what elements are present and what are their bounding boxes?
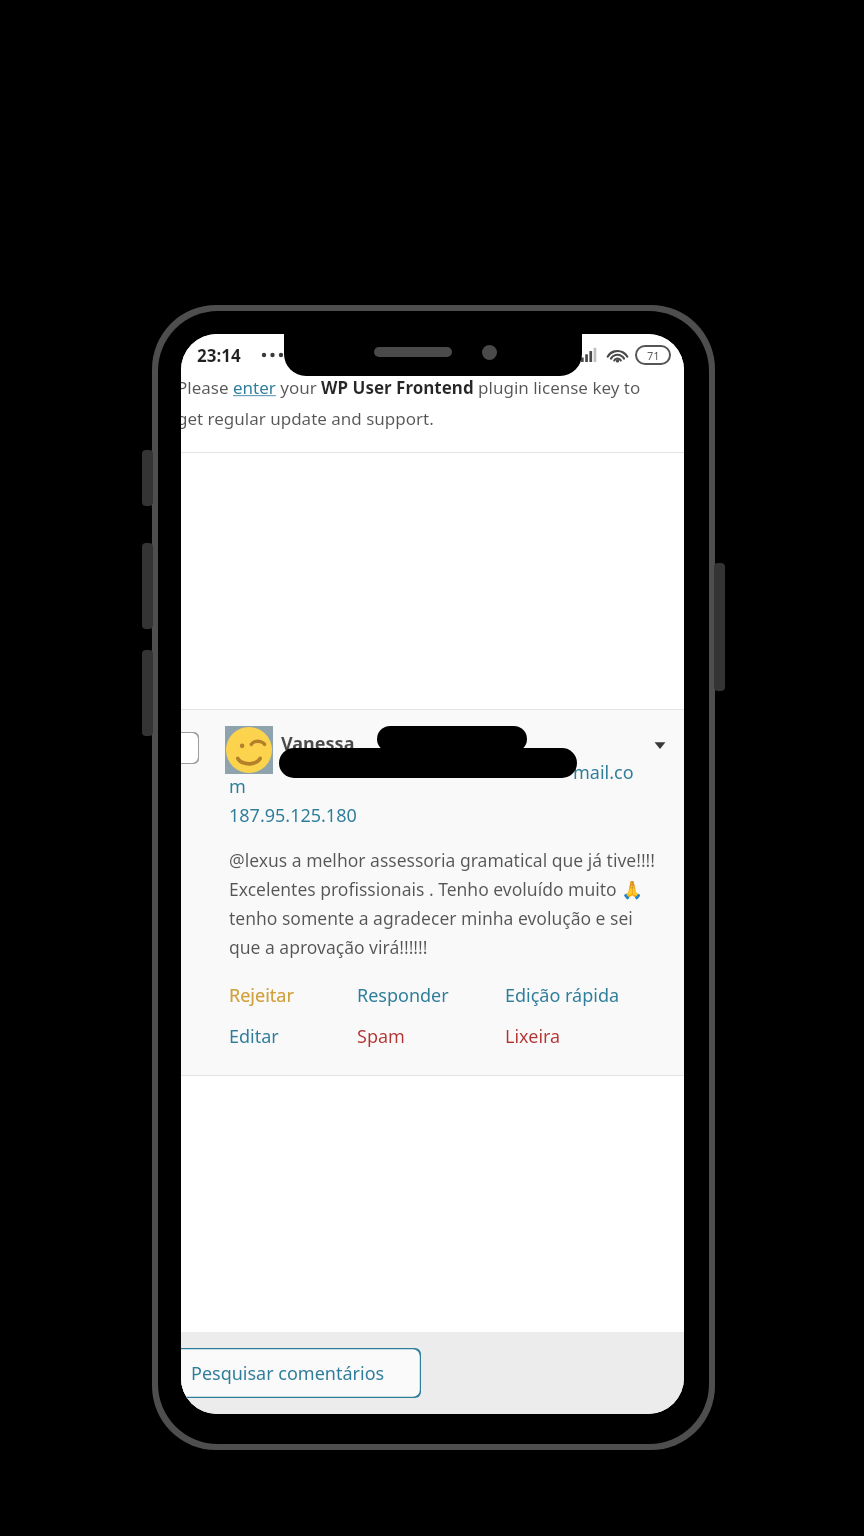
staticText: m <box>229 774 246 799</box>
staticText: Lixeira <box>505 1024 561 1049</box>
button[interactable]: Lixeira <box>505 1024 665 1049</box>
button[interactable]: Edição rápida <box>505 983 665 1008</box>
staticText: get regular update and support. <box>181 407 434 430</box>
staticText: Pesquisar comentários <box>191 1361 385 1386</box>
staticText: 187.95.125.180 <box>229 803 357 828</box>
staticText: Rejeitar <box>229 983 294 1008</box>
button[interactable]: Spam <box>357 1024 505 1049</box>
staticText: 23:14 <box>197 344 241 367</box>
staticText: Edição rápida <box>505 983 620 1008</box>
staticText: Please enter your WP User Frontend plugi… <box>181 376 641 399</box>
staticText: Responder <box>357 983 449 1008</box>
button[interactable]: Editar <box>229 1024 357 1049</box>
staticText: 71 <box>647 348 660 363</box>
button[interactable]: Rejeitar <box>229 983 357 1008</box>
button[interactable]: Responder <box>357 983 505 1008</box>
staticText: mail.co <box>573 760 634 785</box>
staticText: Spam <box>357 1024 405 1049</box>
button[interactable] <box>181 732 199 764</box>
staticText: Editar <box>229 1024 279 1049</box>
staticText: Vanessa <box>281 731 355 756</box>
button[interactable]: Mais opções <box>643 728 677 762</box>
staticText: @lexus a melhor assessoria gramatical qu… <box>229 848 662 959</box>
button[interactable]: Pesquisar comentários <box>181 1348 421 1398</box>
